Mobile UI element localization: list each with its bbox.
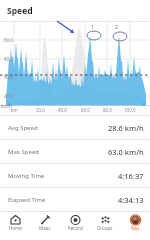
button[interactable]: Avg Speed — [0, 115, 150, 139]
button[interactable]: Elapsed Time — [0, 187, 150, 211]
staticText: 1 — [91, 24, 94, 31]
staticText: 50.0 — [4, 37, 13, 43]
button[interactable]: Groups — [90, 212, 120, 240]
button[interactable]: You — [120, 212, 150, 240]
staticText: km/h — [1, 103, 13, 109]
staticText: 80.0 — [103, 107, 112, 113]
staticText: 100.0 — [124, 107, 136, 113]
staticText: 40.0 — [58, 107, 67, 113]
staticText: 20.0 — [36, 107, 45, 113]
staticText: Speed — [7, 5, 33, 17]
staticText: Max Speed — [8, 148, 39, 156]
button[interactable]: Home — [0, 212, 30, 240]
button[interactable]: Max Speed — [0, 139, 150, 163]
staticText: 20.0 — [4, 93, 13, 99]
staticText: 2 — [115, 24, 118, 31]
staticText: 4:16:37 — [118, 171, 144, 181]
staticText: Moving Time — [8, 172, 45, 180]
button[interactable]: Moving Time — [0, 163, 150, 187]
staticText: 4:34:13 — [118, 195, 144, 205]
staticText: Maps — [39, 225, 51, 231]
staticText: Home — [9, 225, 22, 231]
staticText: Groups — [97, 225, 113, 231]
staticText: 30.0 — [4, 74, 13, 80]
staticText: 60.0 — [81, 107, 90, 113]
staticText: 63.0 km/h — [108, 147, 144, 157]
staticText: Elapsed Time — [8, 196, 46, 204]
staticText: Record — [68, 225, 83, 231]
staticText: You — [131, 225, 139, 231]
staticText: km — [11, 107, 18, 113]
button[interactable]: Record — [60, 212, 90, 240]
staticText: 28.6 km/h — [108, 123, 144, 133]
staticText: 40.0 — [4, 56, 13, 62]
button[interactable]: Maps — [30, 212, 60, 240]
staticText: Avg Speed — [8, 124, 38, 132]
